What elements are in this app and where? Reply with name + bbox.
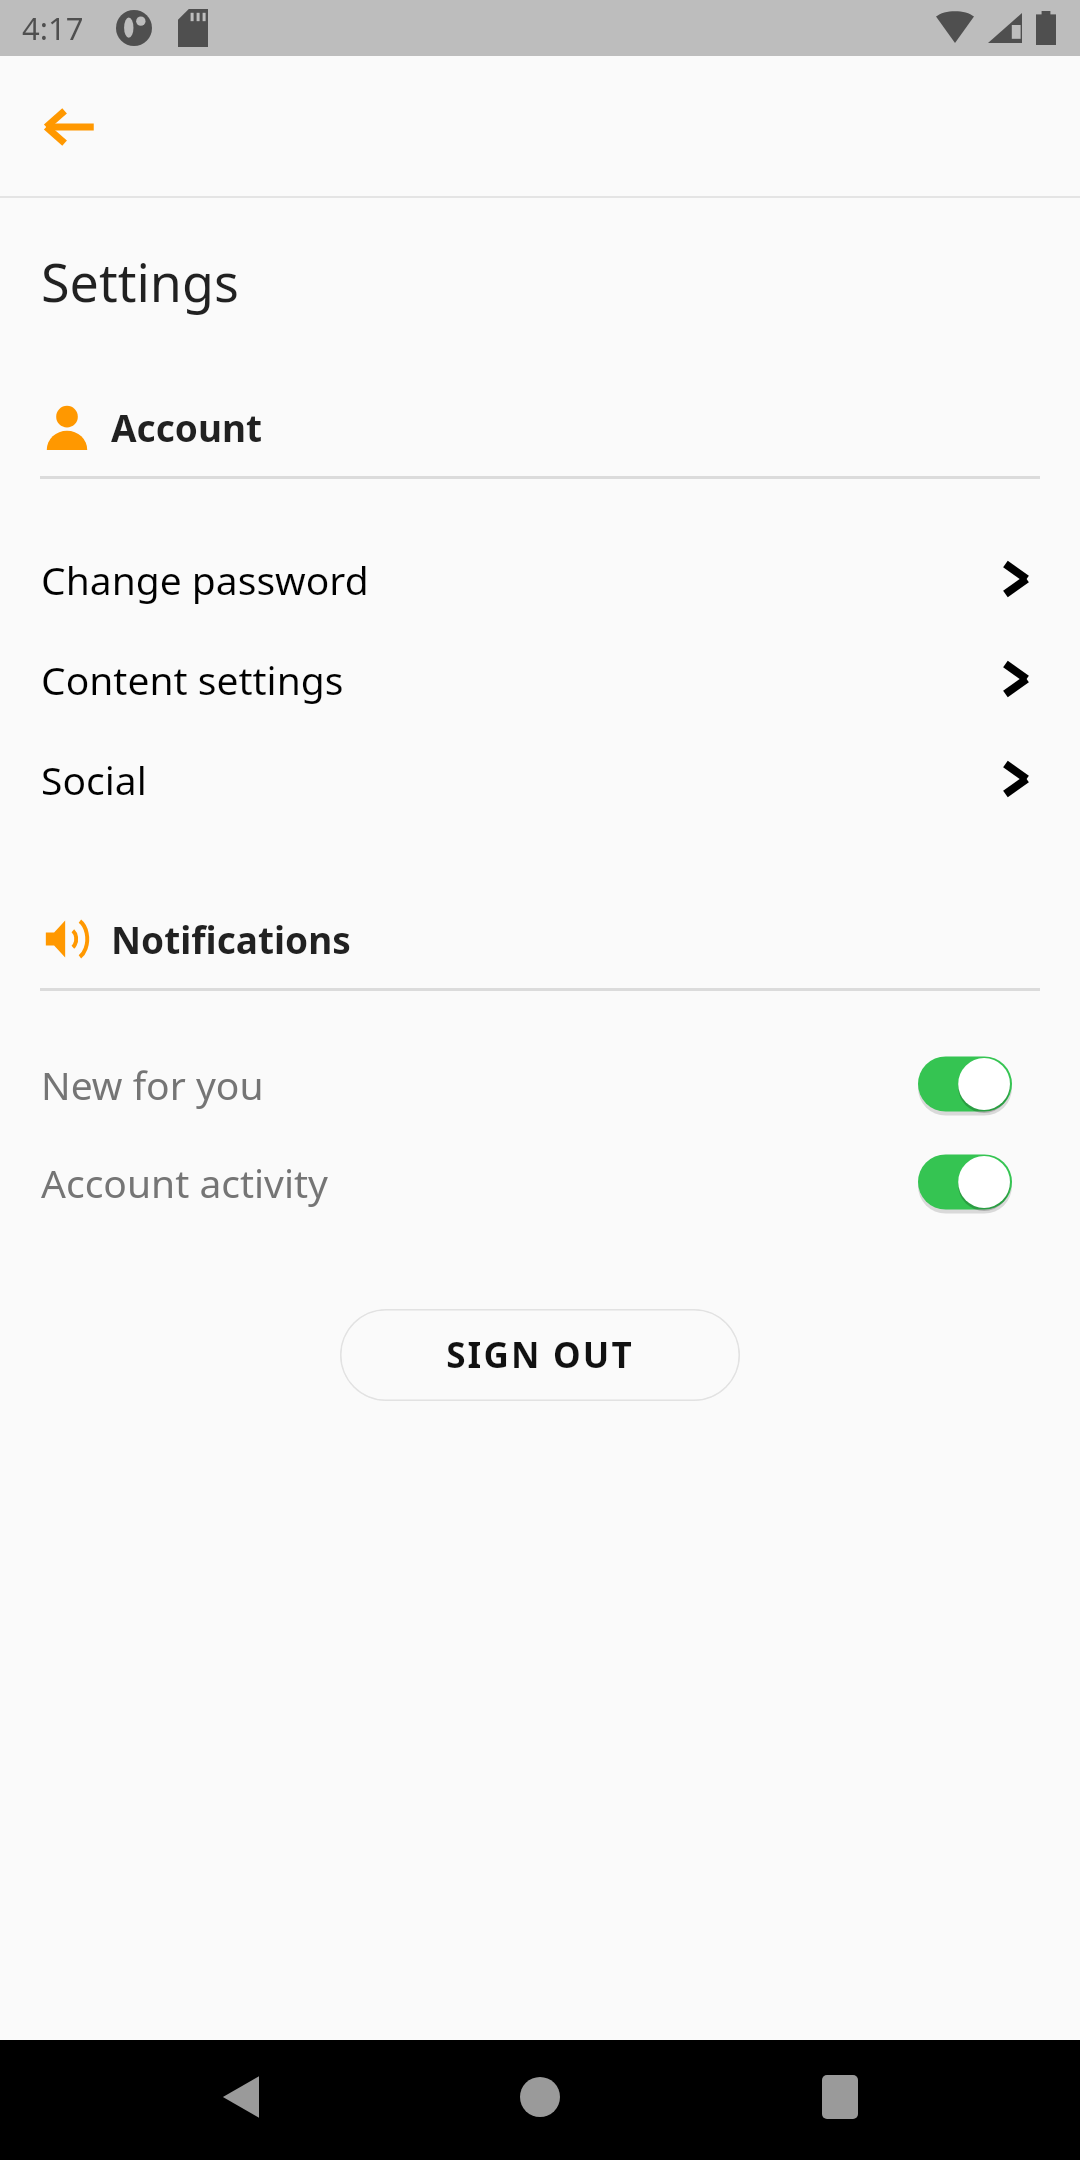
staticText: Settings [41, 246, 239, 317]
staticText: SIGN OUT [446, 1331, 634, 1379]
staticText: Social [41, 753, 147, 806]
staticText: Content settings [41, 653, 344, 706]
button[interactable]: SIGN OUT [340, 1309, 740, 1401]
staticText: 4:17 [22, 7, 84, 49]
button[interactable]: Back [180, 2052, 300, 2142]
staticText: Change password [41, 553, 369, 606]
button[interactable]: Social [0, 729, 1080, 829]
staticText: Notifications [111, 914, 351, 964]
button[interactable]: Content settings [0, 629, 1080, 729]
staticText: New for you [41, 1058, 264, 1111]
button[interactable]: Back [26, 83, 114, 171]
button[interactable]: Home [480, 2052, 600, 2142]
staticText: Account [111, 402, 263, 452]
button[interactable]: Account activity [0, 1133, 1080, 1231]
staticText: Account activity [41, 1156, 328, 1209]
button[interactable]: Recent apps [780, 2052, 900, 2142]
button[interactable]: Change password [0, 529, 1080, 629]
button[interactable]: New for you [0, 1035, 1080, 1133]
